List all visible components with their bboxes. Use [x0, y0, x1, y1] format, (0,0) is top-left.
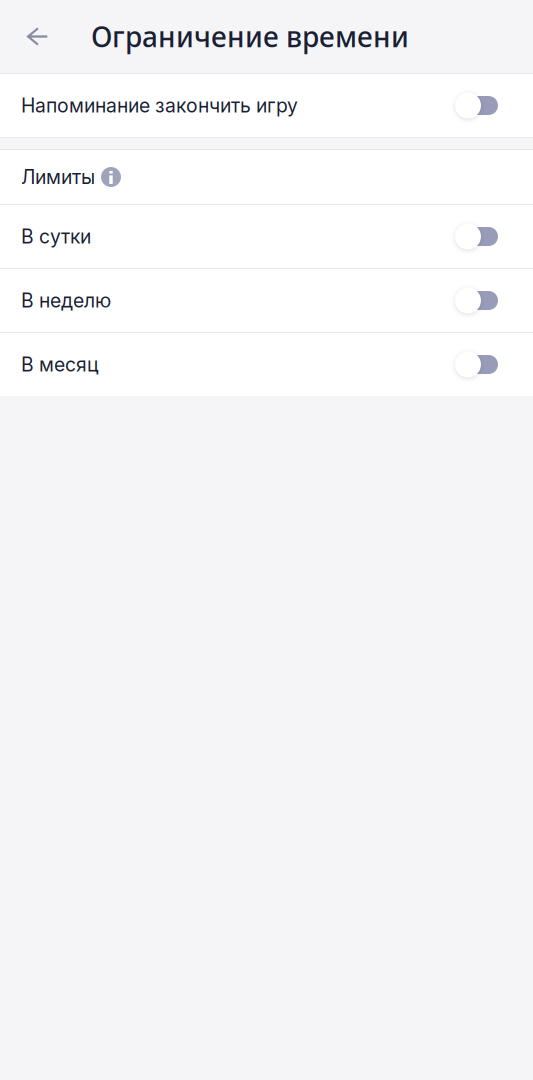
button[interactable]: В месяц — [0, 333, 533, 396]
staticText: В неделю — [21, 289, 111, 312]
staticText: В месяц — [21, 353, 99, 376]
staticText: Лимиты — [21, 165, 95, 189]
button[interactable]: Back — [13, 0, 61, 73]
button[interactable]: В неделю — [0, 269, 533, 332]
button[interactable]: Напоминание закончить игру — [0, 74, 533, 137]
button[interactable]: В сутки — [0, 205, 533, 268]
staticText: Ограничение времени — [91, 17, 409, 55]
staticText: В сутки — [21, 225, 91, 248]
staticText: Напоминание закончить игру — [21, 94, 298, 117]
button[interactable]: About limits — [101, 167, 121, 187]
